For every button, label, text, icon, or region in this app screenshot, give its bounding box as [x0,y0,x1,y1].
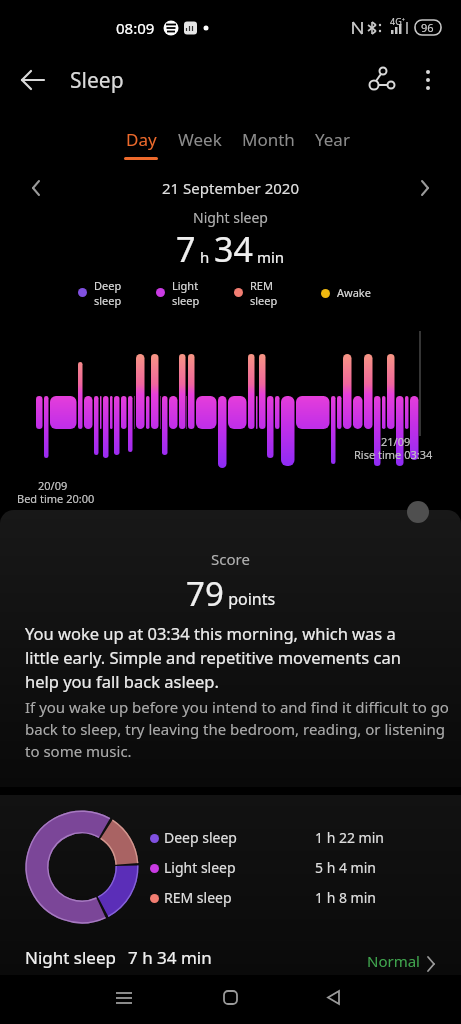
staticText: 1 h 8 min [315,888,376,907]
staticText: 1 h 22 min [315,828,384,847]
staticText: Sleep [70,66,124,95]
staticText: 08:09 [116,18,155,38]
button[interactable] [362,60,402,100]
staticText: REM [250,278,273,293]
button[interactable] [108,983,140,1015]
staticText: 79 [186,571,224,616]
staticText: 96 [421,20,434,35]
staticText: Normal [367,951,420,971]
staticText: Day [126,128,157,151]
staticText: Light sleep [164,858,236,877]
button[interactable] [20,172,52,204]
staticText: 34 [214,226,253,272]
staticText: 4G⁺ [390,15,405,27]
button[interactable] [16,60,56,100]
button[interactable]: Week [178,128,222,151]
button[interactable]: Day [124,128,158,160]
button[interactable] [320,983,352,1015]
staticText: sleep [94,293,122,308]
staticText: Rise time 03:34 [354,447,433,462]
staticText: Night sleep [193,208,268,227]
button[interactable] [215,983,247,1015]
button[interactable]: Month [242,128,295,151]
staticText: Deep [94,278,122,293]
staticText: 20/09 [38,478,68,493]
staticText: Night sleep [25,946,116,969]
staticText: 5 h 4 min [315,858,376,877]
staticText: Awake [337,285,371,300]
staticText: Bed time 20:00 [17,491,95,506]
staticText: sleep [172,293,200,308]
staticText: 21 September 2020 [162,178,299,198]
staticText: If you wake up before you intend to and … [25,697,461,762]
staticText: You woke up at 03:34 this morning, which… [25,622,420,693]
staticText: 7 h 34 min [128,946,212,969]
button[interactable] [408,60,448,100]
button[interactable]: Normal [367,951,436,971]
staticText: sleep [250,293,278,308]
staticText: h [196,247,214,267]
staticText: Score [211,549,250,569]
staticText: REM sleep [164,888,232,907]
staticText: min [253,247,285,267]
staticText: 7 [176,226,196,272]
staticText: 21/09 [381,434,411,449]
staticText: points [224,588,276,610]
button[interactable] [410,172,442,204]
button[interactable]: Year [315,128,350,151]
staticText: Deep sleep [164,828,237,847]
staticText: Light [172,278,199,293]
